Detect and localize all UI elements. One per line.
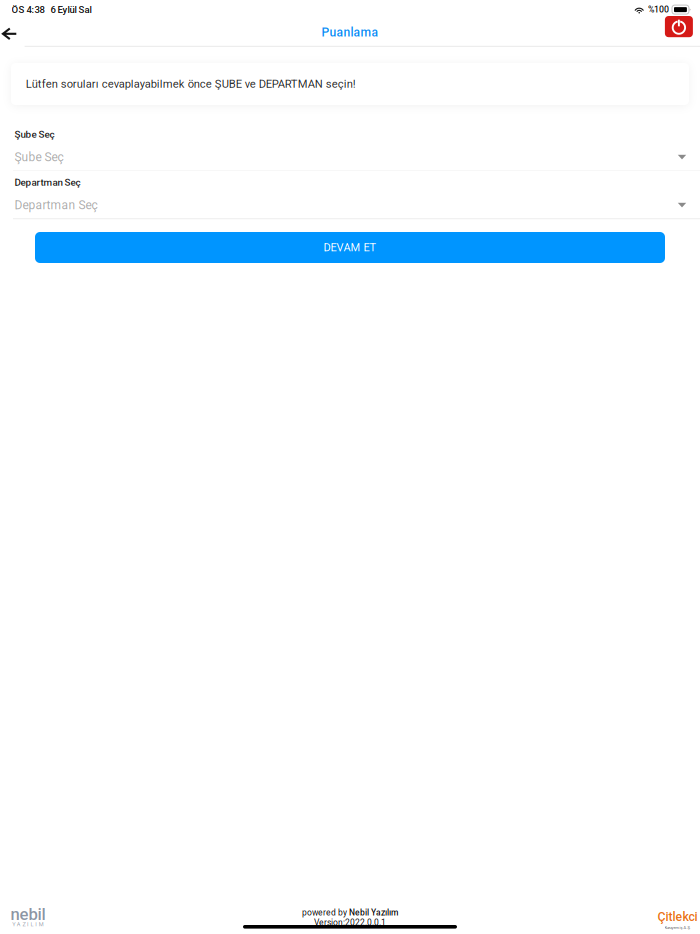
staticText: Çitlekci: [657, 910, 697, 924]
button[interactable]: Departman Seç: [0, 171, 700, 219]
staticText: YAZILIM: [12, 921, 44, 928]
staticText: Şube Seç: [14, 150, 63, 164]
button[interactable]: Çıkış: [665, 16, 693, 37]
staticText: ÖS 4:38 6 Eylül Sal: [11, 4, 91, 15]
staticText: %100: [648, 4, 669, 15]
button[interactable]: DEVAM ET: [35, 232, 665, 263]
staticText: powered by: [302, 907, 349, 917]
button[interactable]: Şube Seç: [0, 123, 700, 171]
staticText: Departman Seç: [14, 177, 80, 188]
staticText: nebil: [10, 904, 45, 924]
staticText: DEVAM ET: [323, 241, 376, 254]
staticText: Nebil Yazılım: [349, 907, 398, 917]
staticText: Lütfen soruları cevaplayabilmek önce ŞUB…: [26, 77, 356, 90]
staticText: Puanlama: [321, 25, 378, 39]
staticText: Kuruyemiş A.Ş.: [664, 925, 690, 930]
staticText: Version:2022.0.0.1: [314, 917, 386, 927]
staticText: Departman Seç: [14, 198, 97, 212]
button[interactable]: Geri: [0, 19, 25, 49]
staticText: Şube Seç: [14, 129, 54, 140]
